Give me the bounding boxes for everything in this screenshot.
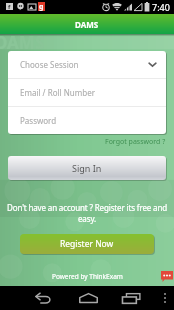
button[interactable]: Sign In	[8, 156, 166, 180]
button[interactable]: Choose Session	[8, 51, 166, 78]
button[interactable]: Register Now	[20, 234, 154, 254]
staticText: 7:40	[152, 1, 170, 13]
button[interactable]: Recent apps	[119, 286, 143, 310]
staticText: Password	[20, 115, 57, 126]
staticText: Sign In	[72, 162, 102, 174]
staticText: DAMS	[75, 19, 99, 30]
button[interactable]: Forgot password ?	[100, 136, 166, 148]
button[interactable]: Email / Roll Number	[8, 79, 166, 106]
button[interactable]: Back	[30, 286, 54, 310]
staticText: Powered by ThinkExam	[52, 272, 123, 281]
staticText: Forgot password ?	[105, 137, 166, 147]
button[interactable]: More options	[156, 286, 174, 310]
staticText: Email / Roll Number	[20, 87, 95, 98]
staticText: Register Now	[60, 238, 114, 250]
staticText: Don't have an account ? Register its fre…	[0, 202, 174, 224]
staticText: Choose Session	[20, 59, 79, 70]
staticText: DAMS	[0, 31, 45, 54]
staticText: f	[8, 3, 11, 10]
button[interactable]: Password	[8, 107, 166, 134]
staticText: g	[39, 2, 44, 11]
button[interactable]: Feedback	[161, 271, 173, 282]
button[interactable]: Home	[76, 286, 100, 310]
